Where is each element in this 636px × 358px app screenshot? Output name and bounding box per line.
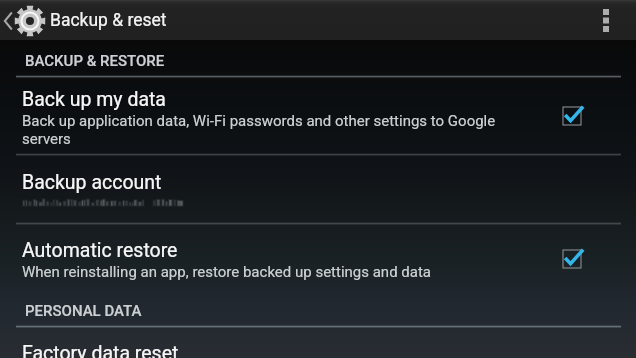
button[interactable] <box>0 156 636 222</box>
staticText: Automatic restore <box>22 239 178 262</box>
staticText: Backup account <box>22 171 162 194</box>
button[interactable] <box>0 226 636 286</box>
staticText: When reinstalling an app, restore backed… <box>22 263 522 281</box>
button[interactable]: Toggle setting <box>551 238 593 280</box>
staticText: Back up my data <box>22 88 166 111</box>
button[interactable] <box>0 330 636 358</box>
button[interactable] <box>0 80 636 154</box>
staticText: BACKUP & RESTORE <box>25 52 165 70</box>
button[interactable]: Navigate up <box>0 0 48 40</box>
button[interactable]: Toggle setting <box>551 95 593 137</box>
staticText: PERSONAL DATA <box>25 302 142 320</box>
staticText: Factory data reset <box>22 342 179 358</box>
staticText: Backup & reset <box>50 9 167 31</box>
button[interactable]: More options <box>588 0 634 40</box>
staticText: Back up application data, Wi-Fi password… <box>22 112 522 148</box>
